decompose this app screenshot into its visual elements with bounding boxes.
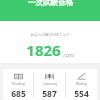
staticText: 587 (42, 88, 57, 100)
staticText: Reading (12, 82, 25, 86)
staticText: 685 (11, 88, 26, 100)
staticText: 554 (74, 88, 89, 100)
button[interactable]: Listening (34, 69, 65, 100)
other: Listening (45, 73, 54, 80)
button[interactable]: Reading (3, 69, 33, 100)
staticText: Listening (43, 82, 57, 86)
other: Reading (14, 73, 23, 80)
button[interactable]: Writing (66, 69, 97, 100)
staticText: あなたの累計CSEスコア (30, 32, 70, 37)
staticText: Writing (76, 82, 87, 86)
staticText: /2250 (63, 53, 74, 58)
staticText: 1826 (26, 40, 61, 60)
other: Writing (77, 73, 86, 80)
staticText: 一次試験合格 (28, 0, 73, 7)
